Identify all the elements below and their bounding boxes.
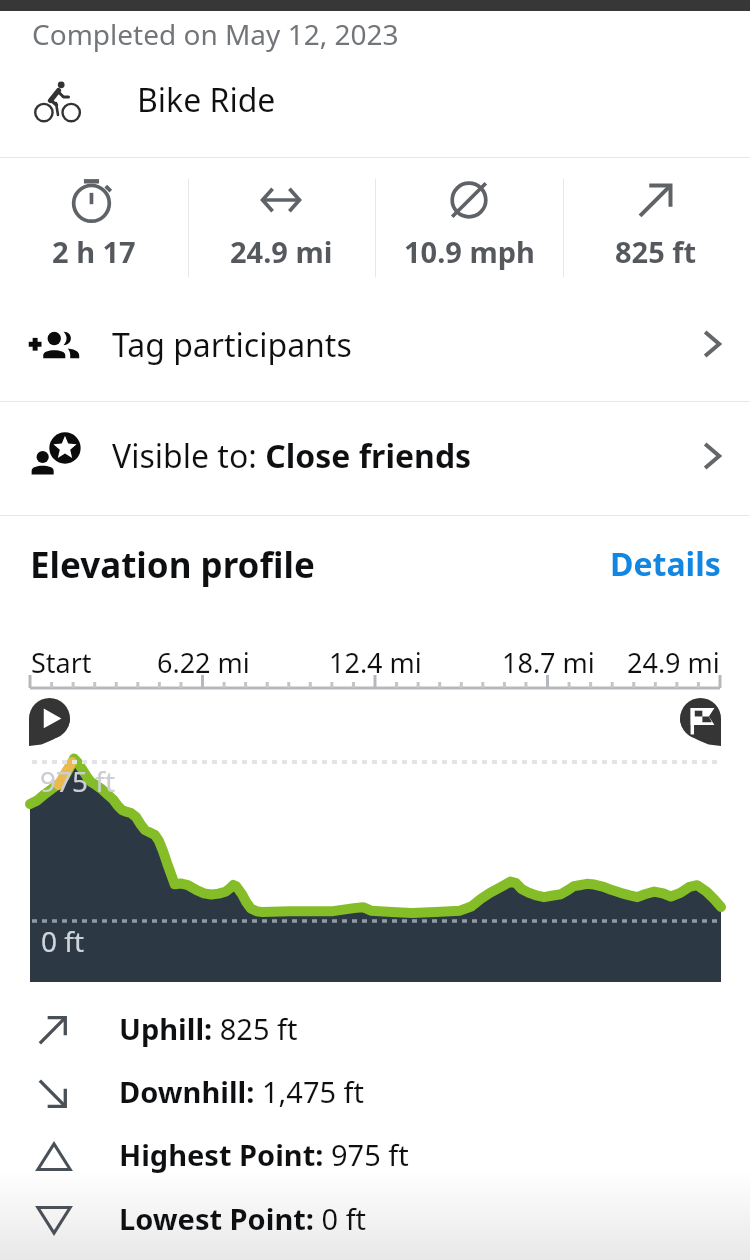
staticText: 12.4 mi: [329, 644, 422, 681]
button[interactable]: Details: [586, 538, 721, 590]
staticText: 18.7 mi: [502, 644, 595, 681]
staticText: Tag participants: [112, 323, 352, 367]
staticText: Elevation profile: [30, 541, 315, 589]
staticText: Bike Ride: [137, 78, 276, 122]
staticText: 10.9 mph: [404, 232, 535, 271]
staticText: 0 ft: [41, 922, 85, 960]
staticText: 975 ft: [40, 762, 116, 800]
staticText: Highest Point: 975 ft: [119, 1135, 409, 1174]
staticText: 2 h 17: [52, 232, 136, 271]
button[interactable]: Tag participants: [0, 290, 750, 401]
staticText: Start: [31, 644, 92, 681]
staticText: 24.9 mi: [627, 644, 720, 681]
staticText: 825 ft: [615, 232, 697, 271]
staticText: Completed on May 12, 2023: [32, 15, 399, 53]
staticText: Uphill: 825 ft: [119, 1009, 298, 1048]
button[interactable]: Visible to Close friends: [0, 402, 750, 515]
staticText: Downhill: 1,475 ft: [119, 1072, 365, 1111]
staticText: 6.22 mi: [157, 644, 250, 681]
staticText: 24.9 mi: [230, 232, 333, 271]
staticText: Details: [610, 542, 721, 586]
staticText: Visible to: Close friends: [112, 434, 472, 478]
staticText: Lowest Point: 0 ft: [119, 1199, 367, 1238]
